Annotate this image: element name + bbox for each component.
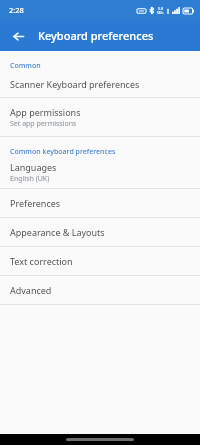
staticText: Common xyxy=(10,61,41,71)
staticText: 5.8 xyxy=(158,6,163,11)
staticText: Keyboard preferences xyxy=(38,28,154,43)
staticText: 2:28 xyxy=(9,5,24,15)
staticText: KB/s xyxy=(157,11,164,15)
button[interactable]: Advanced xyxy=(0,276,200,304)
staticText: Text correction xyxy=(10,255,73,267)
button[interactable]: Scanner Keyboard preferences xyxy=(0,71,200,97)
button[interactable]: Back xyxy=(5,23,31,49)
button[interactable]: Text correction xyxy=(0,247,200,275)
button[interactable]: App permissions xyxy=(0,98,200,136)
staticText: Advanced xyxy=(10,284,52,296)
button[interactable]: Appearance & Layouts xyxy=(0,218,200,246)
staticText: Common keyboard preferences xyxy=(10,147,116,157)
staticText: Preferences xyxy=(10,197,61,209)
staticText: Scanner Keyboard preferences xyxy=(10,78,140,90)
staticText: Set app permissions xyxy=(10,119,77,129)
button[interactable]: Preferences xyxy=(0,189,200,217)
staticText: Languages xyxy=(10,161,57,173)
button[interactable]: Languages xyxy=(0,157,200,188)
staticText: App permissions xyxy=(10,106,81,118)
staticText: English (UK) xyxy=(10,174,50,184)
staticText: Appearance & Layouts xyxy=(10,226,105,238)
